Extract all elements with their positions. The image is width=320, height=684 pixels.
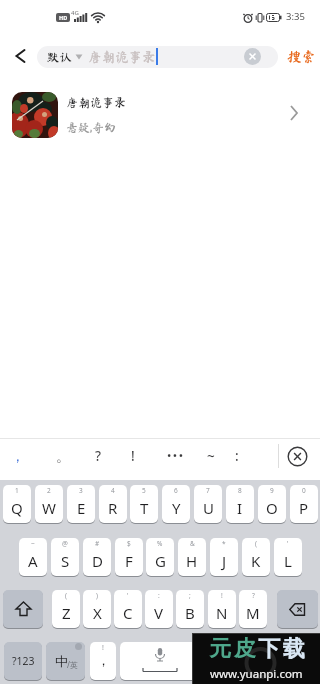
button[interactable]: 搜索 [284,44,318,69]
staticText: ? [252,591,255,600]
button[interactable]: & [178,538,206,576]
staticText: M [246,603,260,623]
staticText: ( [65,591,67,600]
button[interactable]: # [83,538,111,576]
staticText: 6 [174,486,178,495]
staticText: P [299,498,309,518]
button[interactable]: ' [114,590,142,628]
button[interactable]: 6 [162,485,190,523]
button[interactable]: 0 [290,485,318,523]
button[interactable]: 9 [258,485,286,523]
button[interactable]: 4 [99,485,127,523]
button[interactable] [0,84,320,146]
staticText: 0 [302,486,306,495]
button[interactable]: ? [239,590,267,628]
staticText: H [186,551,198,571]
button[interactable] [6,42,34,70]
staticText: ! [131,447,135,465]
button[interactable] [120,642,200,680]
button[interactable]: ~ [201,442,221,470]
staticText: A [28,551,38,571]
staticText: L [284,551,292,571]
button[interactable]: ' [274,538,302,576]
button[interactable]: 7 [194,485,222,523]
staticText: ?123 [12,654,35,668]
staticText: W [42,498,56,518]
staticText: K [251,551,261,571]
staticText: Z [62,603,71,623]
staticText: @ [62,539,68,548]
button[interactable]: % [146,538,174,576]
button[interactable]: 5 [130,485,158,523]
staticText: HD [59,14,68,21]
staticText: X [93,603,102,623]
staticText: F [125,551,133,571]
button[interactable]: ( [242,538,270,576]
button[interactable] [244,48,261,65]
button[interactable]: ! [123,442,143,470]
button[interactable] [235,642,317,680]
staticText: 4G [71,9,79,17]
staticText: 中 [55,653,68,669]
staticText: ~ [31,539,35,548]
staticText: * [222,539,226,548]
staticText: ( [255,539,257,548]
button[interactable]: : [227,442,247,470]
button[interactable] [277,590,318,628]
button[interactable]: $ [115,538,143,576]
staticText: 4 [111,486,115,495]
staticText: ! [102,643,104,653]
staticText: J [222,551,227,571]
staticText: 悬疑,奇幻 [66,121,117,133]
staticText: ) [96,591,98,600]
button[interactable]: 8 [226,485,254,523]
button[interactable]: * [210,538,238,576]
staticText: Q [11,498,23,518]
staticText: V [154,603,164,623]
button[interactable]: ? [88,442,108,470]
button[interactable]: : [145,590,173,628]
button[interactable]: 。 [53,442,73,470]
button[interactable]: ) [83,590,111,628]
staticText: ? [95,447,102,465]
staticText: G [155,551,166,571]
button[interactable]: 3 [67,485,95,523]
button[interactable]: ， [8,442,28,470]
button[interactable]: ! [90,642,116,680]
staticText: N [216,603,228,623]
staticText: www.yuanpi.com [210,666,303,682]
button[interactable]: @ [51,538,79,576]
staticText: T [140,498,149,518]
button[interactable]: ! [208,590,236,628]
button[interactable]: 。 [204,642,230,680]
staticText: ! [221,591,223,600]
staticText: ， [97,652,110,668]
staticText: ， [11,448,25,465]
staticText: 8 [238,486,242,495]
button[interactable] [286,445,308,467]
staticText: 下载 [257,635,306,663]
staticText: I [237,498,243,518]
staticText: 7 [206,486,210,495]
button[interactable]: 1 [3,485,31,523]
button[interactable]: ( [52,590,80,628]
staticText: 2 [47,486,51,495]
staticText: C [123,603,133,623]
staticText: 。 [211,653,224,669]
staticText: ' [287,539,289,548]
staticText: 唐朝诡事录 [88,50,156,64]
staticText: 元皮 [208,635,257,663]
button[interactable]: 2 [35,485,63,523]
button[interactable]: ?123 [4,642,42,680]
button[interactable]: ; [176,590,204,628]
button[interactable]: ••• [166,442,186,470]
staticText: 9 [270,486,274,495]
staticText: ••• [167,448,185,464]
button[interactable] [3,590,43,628]
staticText: D [92,551,103,571]
staticText: U [203,498,214,518]
button[interactable]: ~ [19,538,47,576]
button[interactable]: 中 [46,642,85,680]
staticText: O [266,498,278,518]
staticText: ' [127,591,129,600]
